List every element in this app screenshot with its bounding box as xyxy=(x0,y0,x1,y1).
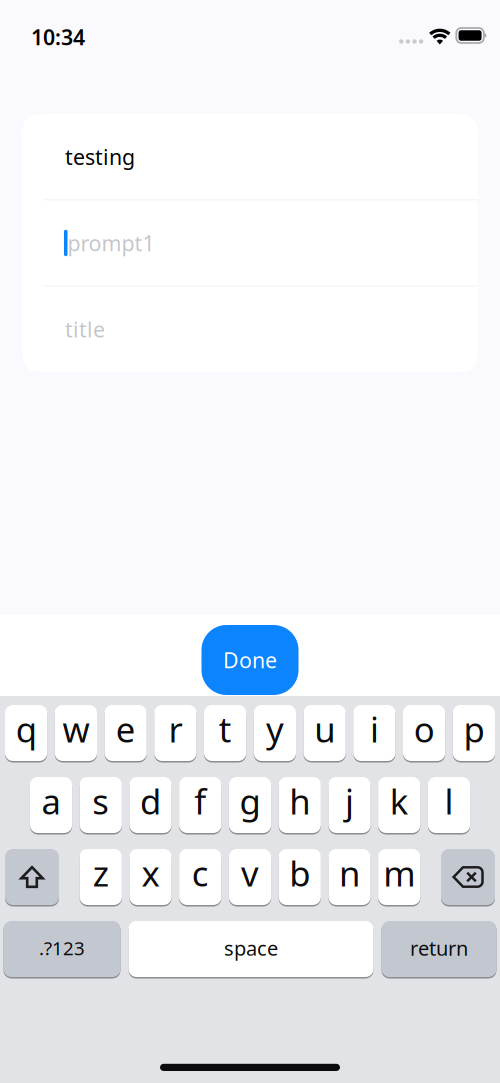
button[interactable]: q xyxy=(5,705,47,761)
staticText: i xyxy=(370,706,379,752)
staticText: m xyxy=(383,850,415,896)
staticText: t xyxy=(219,706,232,752)
button[interactable]: t xyxy=(204,705,246,761)
staticText: s xyxy=(92,778,109,824)
staticText: j xyxy=(345,778,354,824)
button[interactable]: k xyxy=(378,777,420,833)
button[interactable]: o xyxy=(403,705,445,761)
button[interactable]: g xyxy=(229,777,271,833)
button[interactable]: m xyxy=(378,849,420,905)
staticText: .?123 xyxy=(39,936,85,960)
button[interactable]: Done xyxy=(201,625,298,695)
staticText: Done xyxy=(223,646,277,674)
button[interactable]: title xyxy=(22,287,478,372)
button[interactable]: r xyxy=(154,705,196,761)
button[interactable]: y xyxy=(254,705,296,761)
staticText: prompt1 xyxy=(67,229,154,257)
staticText: n xyxy=(339,850,360,896)
button[interactable]: h xyxy=(279,777,321,833)
staticText: a xyxy=(41,778,60,824)
button[interactable]: prompt1 xyxy=(22,200,478,286)
staticText: e xyxy=(116,706,136,752)
button[interactable]: x xyxy=(129,849,172,905)
button[interactable]: u xyxy=(303,705,346,761)
staticText: u xyxy=(314,706,335,752)
button[interactable]: v xyxy=(229,849,271,905)
button[interactable]: l xyxy=(428,777,470,833)
button[interactable]: i xyxy=(353,705,395,761)
button[interactable]: return xyxy=(381,921,496,977)
button[interactable]: p xyxy=(453,705,495,761)
button[interactable]: j xyxy=(328,777,371,833)
staticText: o xyxy=(414,706,435,752)
staticText: testing xyxy=(65,142,135,171)
staticText: k xyxy=(390,778,409,824)
staticText: 10:34 xyxy=(31,23,85,51)
staticText: b xyxy=(289,850,310,896)
button[interactable]: d xyxy=(129,777,172,833)
button[interactable]: Delete xyxy=(441,849,495,905)
button[interactable]: e xyxy=(104,705,147,761)
staticText: q xyxy=(16,706,37,752)
staticText: y xyxy=(266,706,284,752)
staticText: x xyxy=(141,850,159,896)
button[interactable]: n xyxy=(328,849,371,905)
button[interactable]: b xyxy=(279,849,321,905)
staticText: r xyxy=(168,706,182,752)
staticText: v xyxy=(241,850,259,896)
button[interactable]: .?123 xyxy=(3,921,120,977)
staticText: d xyxy=(140,778,161,824)
staticText: space xyxy=(224,935,278,961)
staticText: c xyxy=(192,850,209,896)
staticText: z xyxy=(93,850,109,896)
button[interactable]: a xyxy=(30,777,72,833)
staticText: l xyxy=(444,778,453,824)
staticText: p xyxy=(463,706,484,752)
button[interactable]: Home xyxy=(160,1064,340,1071)
staticText: title xyxy=(65,315,105,343)
button[interactable]: Shift xyxy=(5,849,59,905)
staticText: f xyxy=(194,778,206,824)
staticText: return xyxy=(410,935,468,961)
button[interactable]: testing xyxy=(22,114,478,199)
staticText: w xyxy=(62,706,89,752)
button[interactable]: w xyxy=(55,705,97,761)
button[interactable]: z xyxy=(80,849,122,905)
staticText: g xyxy=(239,778,260,824)
staticText: h xyxy=(289,778,310,824)
button[interactable]: space xyxy=(128,921,373,977)
button[interactable]: f xyxy=(179,777,221,833)
button[interactable]: s xyxy=(80,777,122,833)
button[interactable]: c xyxy=(179,849,221,905)
